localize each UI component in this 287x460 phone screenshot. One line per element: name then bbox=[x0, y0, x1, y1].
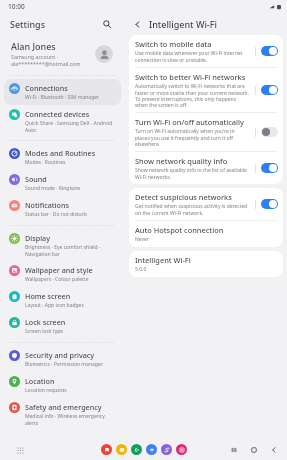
button[interactable]: App a bbox=[101, 444, 112, 455]
staticText: Status bar · Do not disturb bbox=[25, 211, 87, 218]
staticText: Biometrics · Permission manager bbox=[25, 361, 103, 368]
button[interactable]: Switch to better Wi-Fi networks bbox=[129, 68, 283, 112]
button[interactable]: Switch to mobile data bbox=[129, 35, 283, 67]
staticText: Modes and Routines bbox=[25, 148, 96, 158]
staticText: Show network quality info in the list of… bbox=[135, 167, 250, 180]
staticText: Location requests bbox=[25, 387, 67, 394]
button[interactable]: Back bbox=[129, 16, 145, 32]
button[interactable]: Home screen bbox=[4, 287, 121, 313]
staticText: Use mobile data whenever your Wi-Fi inte… bbox=[135, 50, 250, 63]
button[interactable]: Auto Hotspot connection bbox=[129, 221, 283, 247]
staticText: Wallpapers · Colour palette bbox=[25, 276, 89, 283]
button[interactable]: Search bbox=[99, 16, 115, 32]
button[interactable]: Location bbox=[4, 372, 121, 398]
button[interactable]: Alan Jones bbox=[4, 34, 121, 73]
staticText: Alan Jones bbox=[11, 40, 56, 52]
button[interactable]: Lock screen bbox=[4, 313, 121, 339]
staticText: Samsung account · bbox=[11, 53, 59, 60]
button[interactable]: App f bbox=[176, 444, 187, 455]
staticText: Get notified when suspicious activity is… bbox=[135, 203, 250, 216]
staticText: 10:00 bbox=[8, 2, 25, 11]
staticText: Lock screen bbox=[25, 317, 66, 327]
staticText: Intelligent Wi-Fi bbox=[149, 18, 217, 30]
button[interactable]: Connections bbox=[4, 79, 121, 105]
staticText: Settings bbox=[10, 18, 46, 30]
button[interactable]: Apps bbox=[14, 444, 26, 456]
staticText: Wallpaper and style bbox=[25, 265, 93, 275]
button[interactable]: Back bbox=[268, 444, 279, 455]
staticText: Never bbox=[135, 236, 149, 243]
staticText: Switch to better Wi-Fi networks bbox=[135, 72, 246, 82]
staticText: Automatically switch to Wi-Fi networks t… bbox=[135, 83, 250, 108]
button[interactable]: Security and privacy bbox=[4, 346, 121, 372]
button[interactable]: Recents bbox=[228, 444, 239, 455]
staticText: Connections bbox=[25, 83, 68, 93]
button[interactable]: Switch to mobile data toggle bbox=[261, 46, 278, 56]
button[interactable]: App c bbox=[131, 444, 142, 455]
button[interactable]: Safety and emergency bbox=[4, 398, 121, 430]
button[interactable]: Turn Wi-Fi on/off automatically bbox=[129, 113, 283, 151]
staticText: Intelligent Wi-Fi bbox=[135, 255, 191, 265]
staticText: ala*********@hotmail.com bbox=[11, 60, 81, 67]
button[interactable]: Detect suspicious networks toggle bbox=[261, 199, 278, 209]
staticText: Connected devices bbox=[25, 109, 90, 119]
staticText: Home screen bbox=[25, 291, 71, 301]
staticText: Turn on Wi-Fi automatically when you're … bbox=[135, 128, 250, 147]
button[interactable]: Sound bbox=[4, 170, 121, 196]
button[interactable]: Detect suspicious networks bbox=[129, 188, 283, 220]
button[interactable]: Home bbox=[248, 444, 259, 455]
staticText: Notifications bbox=[25, 200, 69, 210]
staticText: Brightness · Eye comfort shield · Naviga… bbox=[25, 244, 115, 257]
button[interactable]: App d bbox=[146, 444, 157, 455]
staticText: Switch to mobile data bbox=[135, 39, 212, 49]
staticText: Sound bbox=[25, 174, 47, 184]
button[interactable]: Switch to better Wi-Fi networks toggle bbox=[261, 85, 278, 95]
button[interactable]: Show network quality info toggle bbox=[261, 163, 278, 173]
button[interactable]: Modes and Routines bbox=[4, 144, 121, 170]
staticText: Medical info · Wireless emergency alerts bbox=[25, 413, 115, 426]
staticText: Security and privacy bbox=[25, 350, 95, 360]
button[interactable]: Show network quality info bbox=[129, 152, 283, 184]
staticText: Display bbox=[25, 233, 50, 243]
staticText: Turn Wi-Fi on/off automatically bbox=[135, 117, 244, 127]
staticText: Sound mode · Ringtone bbox=[25, 185, 81, 192]
button[interactable]: Notifications bbox=[4, 196, 121, 222]
staticText: Safety and emergency bbox=[25, 402, 102, 412]
staticText: Screen lock type bbox=[25, 328, 64, 335]
staticText: Show network quality info bbox=[135, 156, 228, 166]
staticText: Detect suspicious networks bbox=[135, 192, 232, 202]
staticText: Layout · App icon badges bbox=[25, 302, 84, 309]
button[interactable]: Turn Wi-Fi on/off automatically toggle bbox=[261, 127, 278, 137]
button[interactable]: Display bbox=[4, 229, 121, 261]
staticText: Modes · Routines bbox=[25, 159, 66, 166]
button[interactable]: Connected devices bbox=[4, 105, 121, 137]
staticText: 5.0.0 bbox=[135, 266, 147, 273]
button[interactable]: App e bbox=[161, 444, 172, 455]
button[interactable]: App b bbox=[116, 444, 127, 455]
button[interactable]: Wallpaper and style bbox=[4, 261, 121, 287]
staticText: Location bbox=[25, 376, 55, 386]
staticText: Quick Share · Samsung DeX · Android Auto bbox=[25, 120, 115, 133]
staticText: Auto Hotspot connection bbox=[135, 225, 224, 235]
staticText: Wi-Fi · Bluetooth · SIM manager bbox=[25, 94, 100, 101]
button[interactable]: Intelligent Wi-Fi bbox=[129, 251, 283, 277]
